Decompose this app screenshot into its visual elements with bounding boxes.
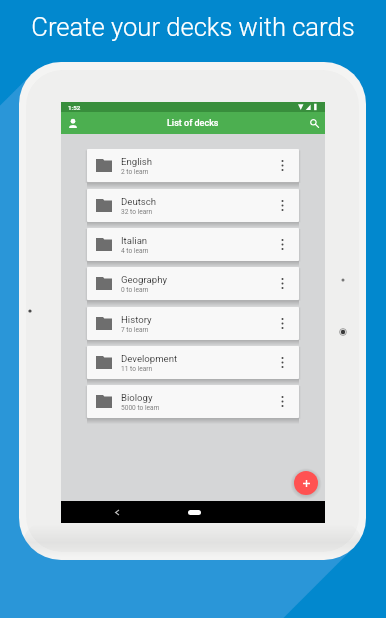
staticText: 32 to learn — [121, 208, 153, 216]
button[interactable]: Development — [87, 346, 299, 379]
staticText: Deutsch — [121, 196, 157, 207]
button[interactable]: Account — [65, 112, 81, 134]
button[interactable]: Geography — [87, 267, 299, 300]
staticText: 1:52 — [68, 104, 81, 111]
staticText: 4 to learn — [121, 247, 149, 255]
button[interactable]: Home — [188, 510, 201, 515]
staticText: List of decks — [167, 118, 219, 129]
staticText: 5000 to learn — [121, 404, 160, 412]
button[interactable]: Italian — [87, 228, 299, 261]
staticText: History — [121, 314, 152, 325]
button[interactable]: Search — [306, 112, 322, 134]
staticText: Biology — [121, 392, 153, 403]
staticText: 2 to learn — [121, 168, 149, 176]
staticText: Create your decks with cards — [31, 12, 355, 42]
button[interactable]: Back — [109, 501, 125, 523]
button[interactable]: More options — [275, 228, 289, 261]
button[interactable]: Biology — [87, 385, 299, 418]
staticText: 7 to learn — [121, 326, 149, 334]
button[interactable]: Deutsch — [87, 189, 299, 222]
button[interactable]: More options — [275, 267, 289, 300]
button[interactable]: History — [87, 307, 299, 340]
button[interactable]: More options — [275, 149, 289, 182]
button[interactable]: More options — [275, 189, 289, 222]
button[interactable]: English — [87, 149, 299, 182]
button[interactable]: More options — [275, 307, 289, 340]
staticText: Italian — [121, 235, 148, 246]
staticText: 11 to learn — [121, 365, 153, 373]
staticText: 0 to learn — [121, 286, 149, 294]
staticText: Geography — [121, 274, 167, 285]
button[interactable]: More options — [275, 385, 289, 418]
staticText: English — [121, 156, 153, 167]
button[interactable]: More options — [275, 346, 289, 379]
button[interactable]: Add deck — [294, 471, 318, 495]
staticText: Development — [121, 353, 178, 364]
